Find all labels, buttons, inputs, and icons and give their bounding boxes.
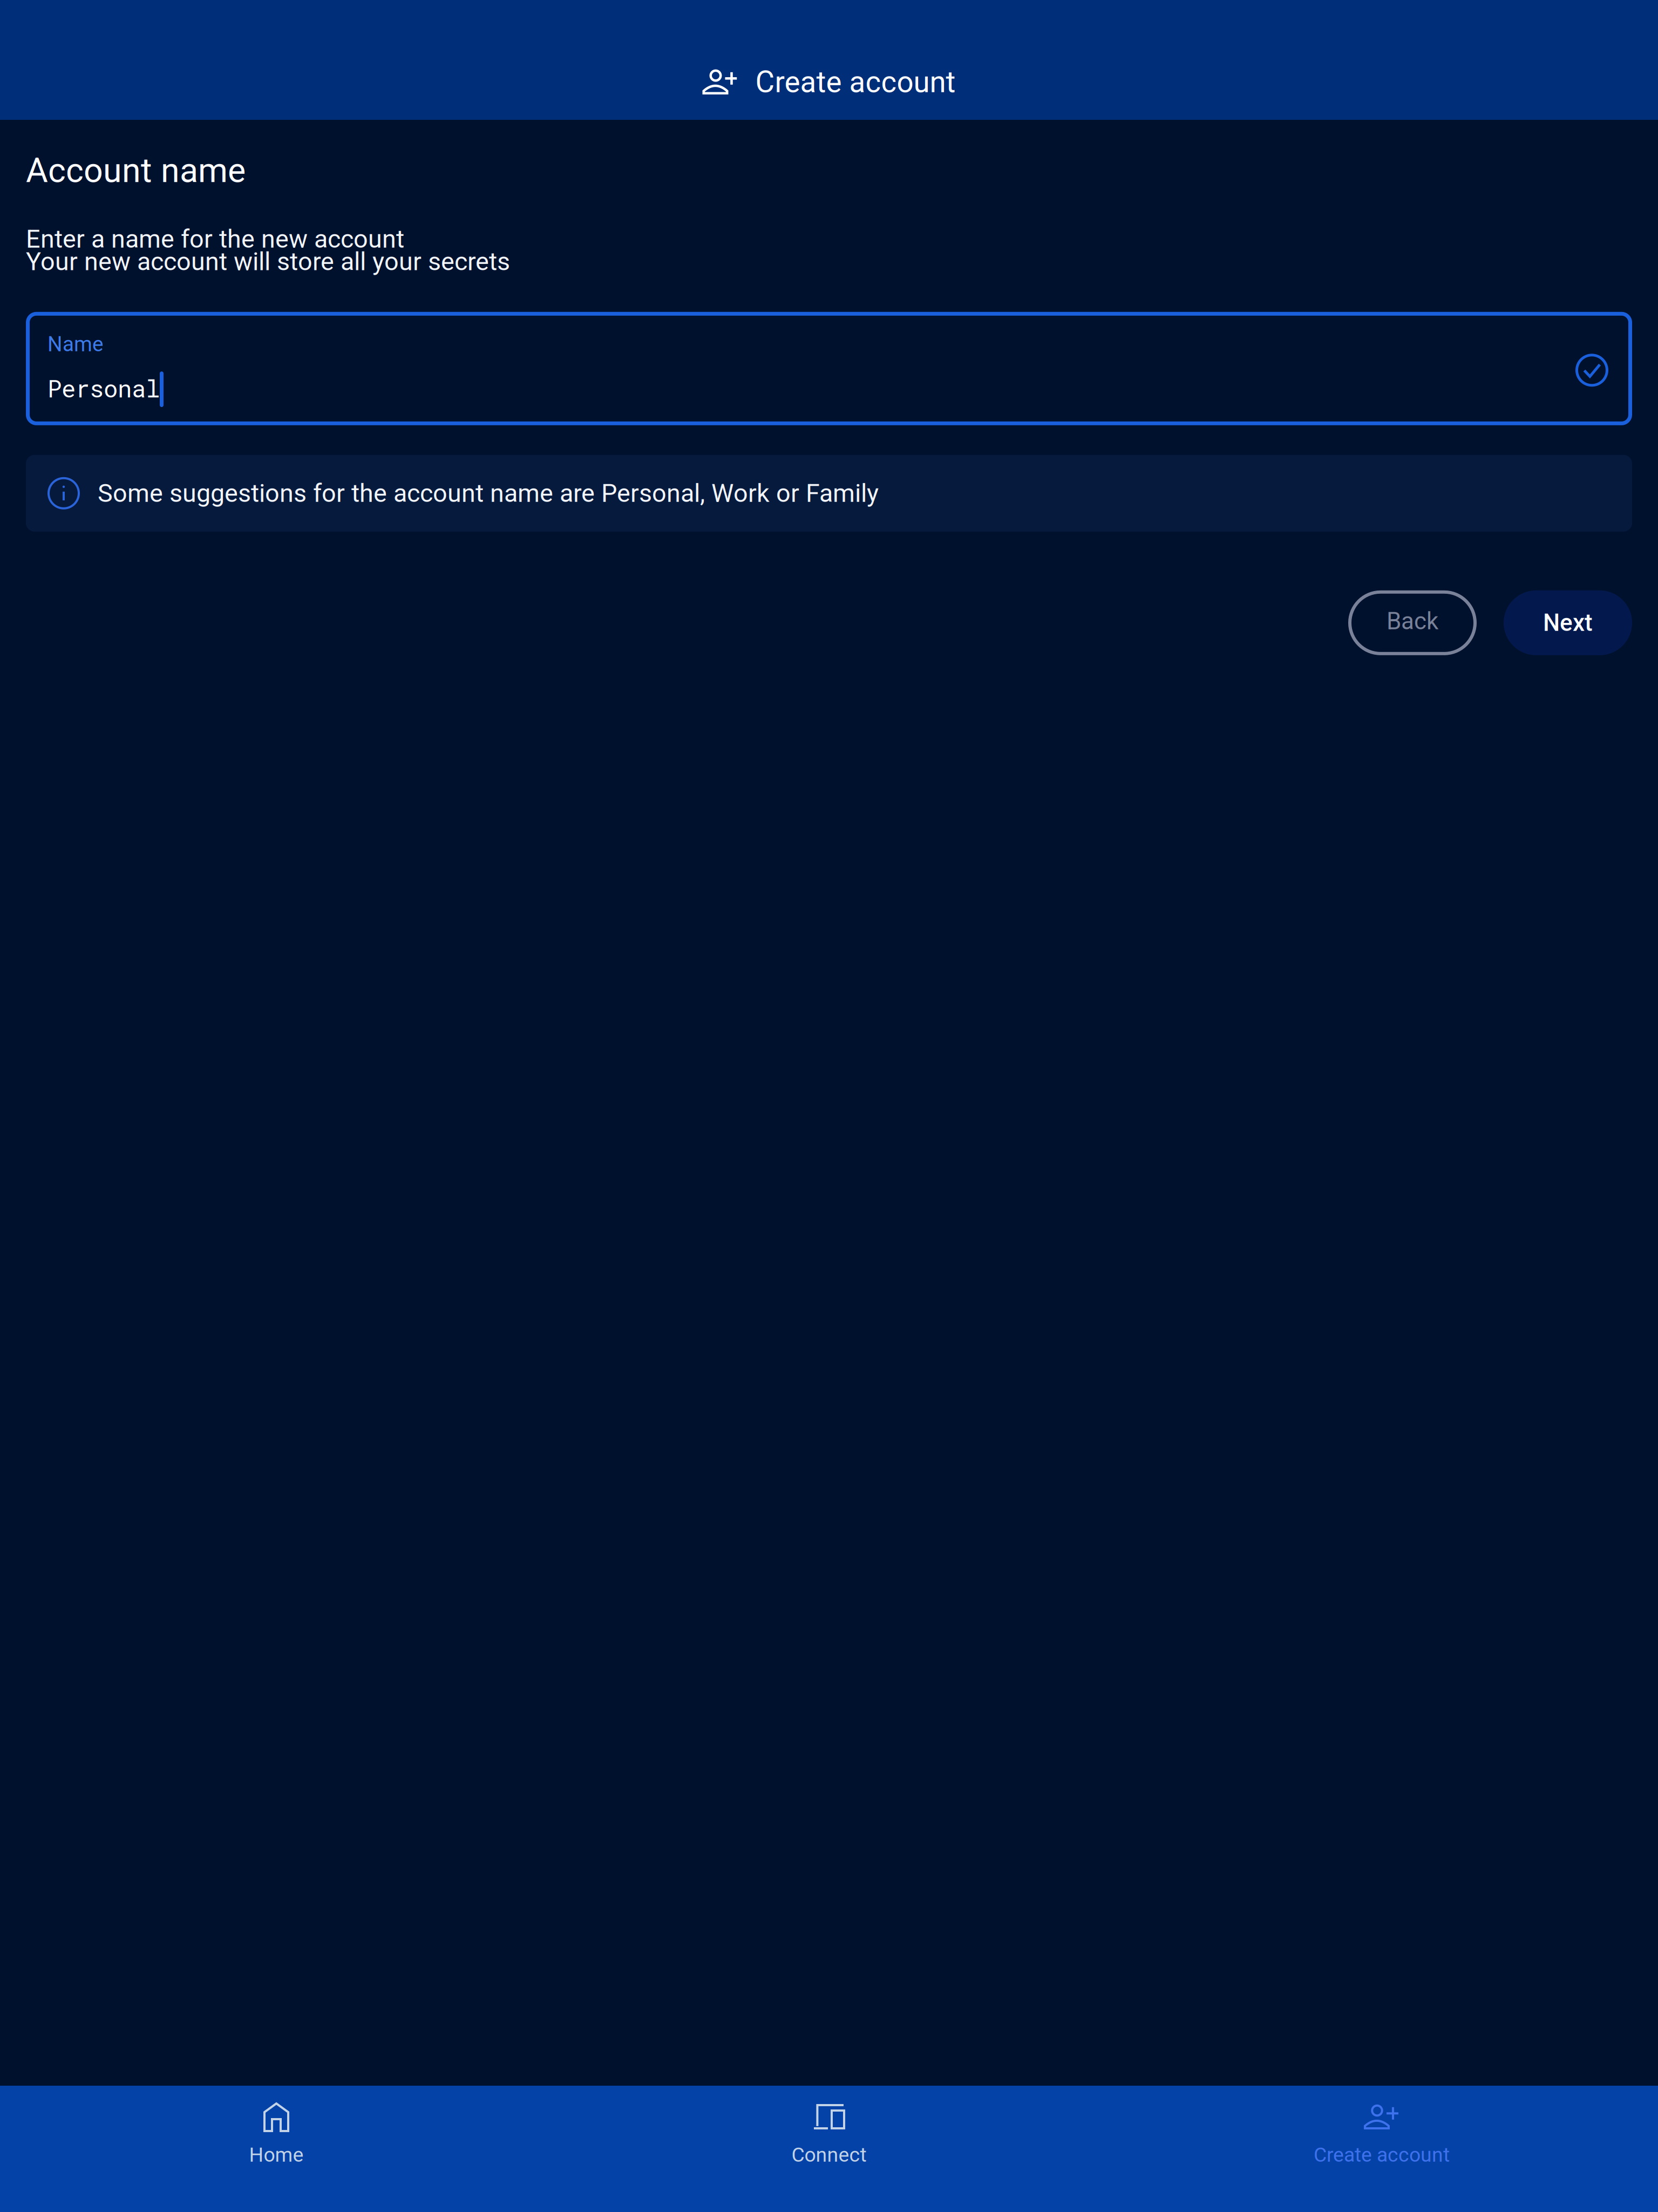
staticText: Next xyxy=(1543,609,1593,637)
staticText: Create account xyxy=(1314,2143,1450,2166)
staticText: Enter a name for the new account Your ne… xyxy=(26,224,510,276)
button[interactable]: Home xyxy=(0,2086,553,2212)
button[interactable]: Connect xyxy=(553,2086,1105,2212)
staticText: Some suggestions for the account name ar… xyxy=(98,479,879,508)
staticText: Name xyxy=(47,332,104,356)
staticText: Personal xyxy=(47,372,160,404)
staticText: Account name xyxy=(26,151,246,190)
button[interactable]: Next xyxy=(1504,590,1632,655)
staticText: Connect xyxy=(791,2143,867,2166)
staticText: Home xyxy=(249,2143,304,2166)
staticText: Back xyxy=(1387,607,1438,635)
button[interactable]: Back xyxy=(1348,590,1477,655)
staticText: Create account xyxy=(755,65,956,99)
button[interactable]: Create account xyxy=(1105,2086,1658,2212)
